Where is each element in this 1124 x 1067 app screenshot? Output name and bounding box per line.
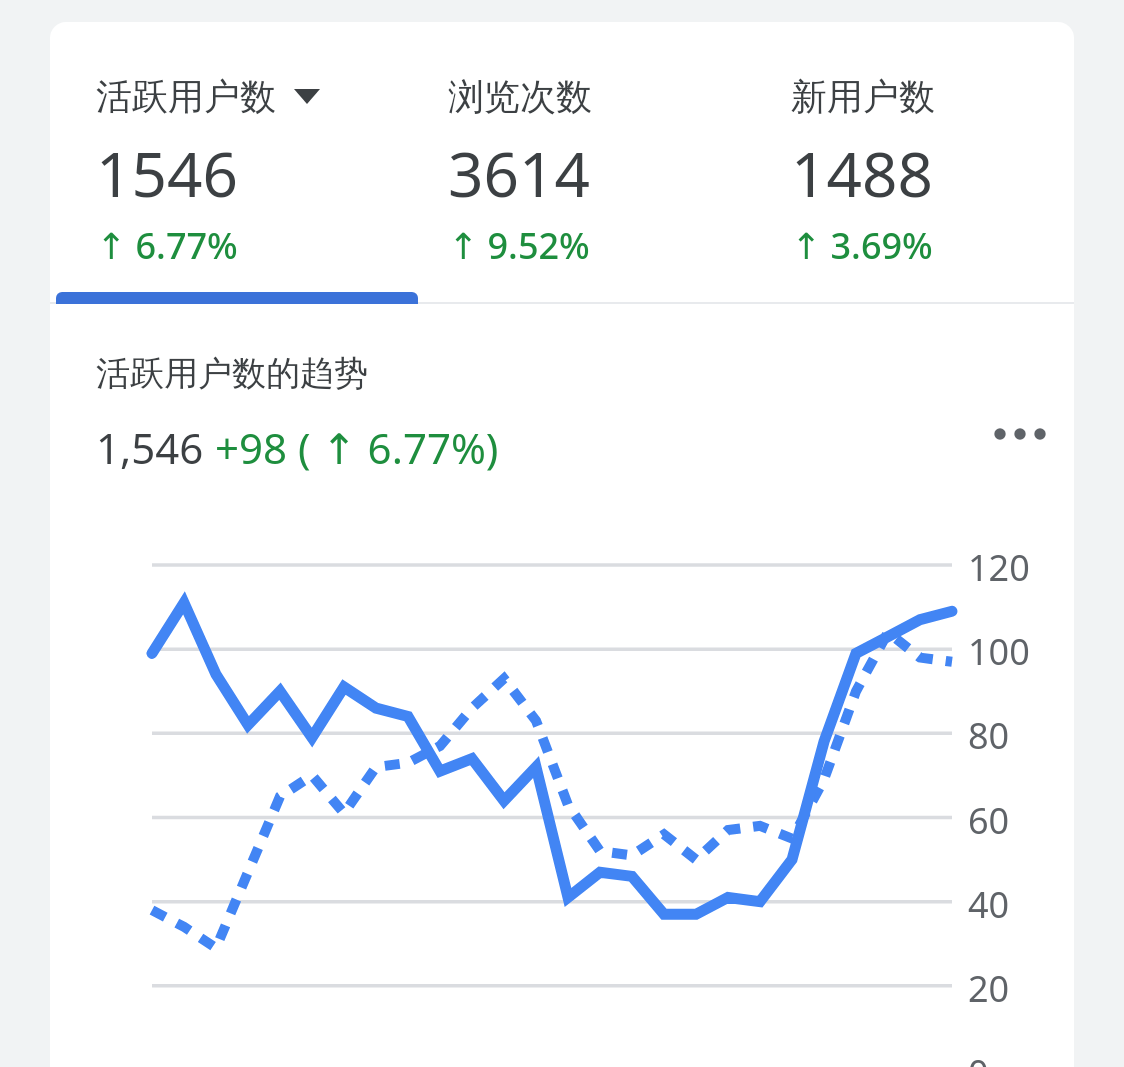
staticText: 0 — [968, 1048, 989, 1067]
button[interactable]: 活跃用户数 — [50, 22, 426, 292]
button[interactable]: 浏览次数 — [426, 22, 769, 292]
staticText: 活跃用户数 — [96, 74, 276, 119]
staticText: 60 — [968, 796, 1010, 845]
staticText: 1546 — [96, 131, 238, 215]
button[interactable] — [56, 292, 418, 304]
staticText: 3614 — [448, 131, 590, 215]
staticText: 新用户数 — [791, 74, 935, 119]
staticText: ↑ 6.77% — [96, 221, 238, 270]
staticText: ↑ 9.52% — [448, 221, 590, 270]
staticText: 1488 — [791, 131, 933, 215]
staticText: 1,546 — [96, 419, 215, 476]
staticText: 活跃用户数的趋势 — [96, 352, 368, 395]
staticText: 浏览次数 — [448, 74, 592, 119]
staticText: 40 — [968, 880, 1010, 929]
staticText: +98 ( ↑ 6.77%) — [215, 419, 499, 476]
staticText: 120 — [968, 543, 1030, 592]
staticText: 100 — [968, 627, 1030, 676]
button[interactable]: More options — [988, 402, 1052, 466]
staticText: ↑ 3.69% — [791, 221, 933, 270]
staticText: 20 — [968, 964, 1010, 1013]
staticText: 80 — [968, 711, 1010, 760]
button[interactable]: 新用户数 — [769, 22, 1074, 292]
